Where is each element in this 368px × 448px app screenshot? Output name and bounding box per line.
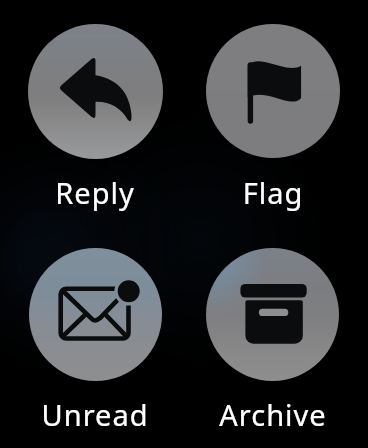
button[interactable]: Flag [206, 24, 340, 158]
staticText: Unread [5, 395, 185, 437]
button[interactable]: Unread [29, 248, 162, 381]
staticText: Reply [5, 173, 185, 215]
button[interactable]: Archive [206, 248, 339, 381]
staticText: Flag [183, 173, 363, 215]
button[interactable]: Reply [28, 24, 163, 159]
staticText: Archive [183, 395, 363, 437]
